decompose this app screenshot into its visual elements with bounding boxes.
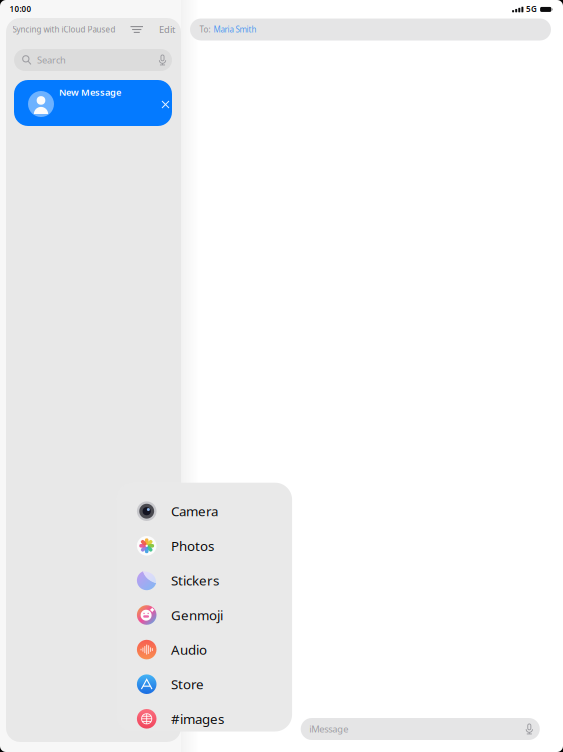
staticText: iMessage xyxy=(309,723,348,735)
button[interactable]: Audio xyxy=(117,632,292,667)
staticText: Syncing with iCloud Paused xyxy=(12,24,115,35)
button[interactable]: Search xyxy=(14,49,172,71)
button[interactable]: Filter conversations xyxy=(125,21,148,38)
staticText: Audio xyxy=(171,641,207,658)
button[interactable]: Camera xyxy=(117,494,292,528)
button[interactable]: Stickers xyxy=(117,563,292,598)
button[interactable]: iMessage xyxy=(301,718,540,740)
staticText: Stickers xyxy=(171,571,219,589)
staticText: To: xyxy=(199,24,210,35)
staticText: #images xyxy=(171,710,224,728)
staticText: Camera xyxy=(171,502,218,520)
button[interactable]: Close xyxy=(159,98,172,111)
staticText: 10:00 xyxy=(9,3,31,14)
staticText: 5G xyxy=(526,3,537,14)
staticText: Photos xyxy=(171,537,214,555)
button[interactable]: New Message xyxy=(14,80,172,126)
button[interactable]: Genmoji xyxy=(117,598,292,632)
button[interactable]: Photos xyxy=(117,528,292,563)
staticText: Store xyxy=(171,675,204,693)
button[interactable]: Edit xyxy=(148,19,178,40)
staticText: Maria Smith xyxy=(213,24,256,35)
staticText: Edit xyxy=(159,23,175,36)
button[interactable]: #images xyxy=(117,701,292,736)
staticText: Search xyxy=(37,54,66,66)
staticText: Genmoji xyxy=(171,606,223,624)
staticText: New Message xyxy=(59,86,121,98)
button[interactable]: Store xyxy=(117,667,292,701)
button[interactable]: Maria Smith xyxy=(210,21,256,38)
